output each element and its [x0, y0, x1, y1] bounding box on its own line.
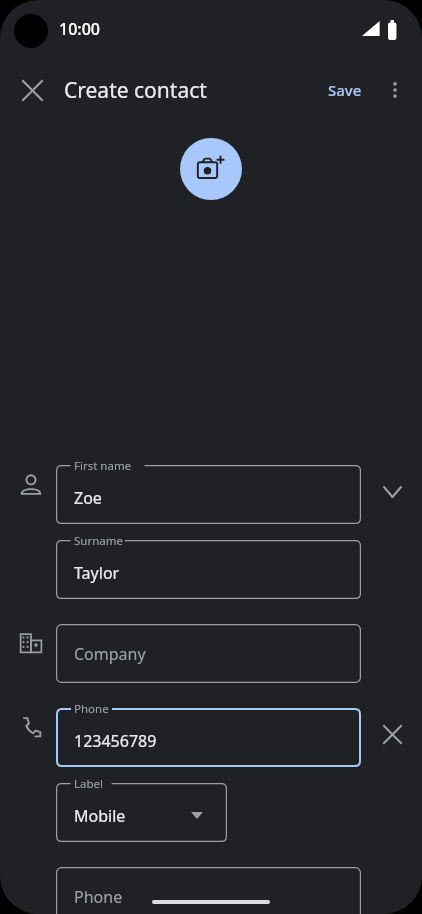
staticText: Phone — [74, 701, 109, 717]
button[interactable]: Close — [8, 66, 56, 114]
button[interactable]: Label — [56, 783, 227, 842]
button[interactable]: Phone — [56, 867, 361, 914]
staticText: Company — [74, 643, 146, 665]
button[interactable]: Phone — [56, 708, 361, 767]
button[interactable]: Company — [56, 624, 361, 683]
button[interactable]: Surname — [56, 540, 361, 599]
staticText: Mobile — [74, 805, 126, 827]
staticText: Save — [328, 80, 362, 100]
staticText: Zoe — [74, 487, 102, 509]
button[interactable]: Expand name fields — [372, 472, 412, 512]
staticText: Surname — [74, 533, 123, 549]
button[interactable]: Add photo — [180, 138, 242, 200]
staticText: Label — [74, 776, 104, 792]
button[interactable]: More options — [371, 66, 419, 114]
staticText: 123456789 — [74, 730, 157, 752]
button[interactable]: Clear phone number — [372, 714, 412, 754]
staticText: First name — [74, 458, 132, 474]
staticText: 10:00 — [59, 18, 100, 40]
staticText: Phone — [74, 886, 123, 908]
staticText: Taylor — [74, 562, 120, 584]
button[interactable]: Save — [320, 74, 370, 106]
staticText: Create contact — [64, 76, 207, 105]
button[interactable]: First name — [56, 465, 361, 524]
